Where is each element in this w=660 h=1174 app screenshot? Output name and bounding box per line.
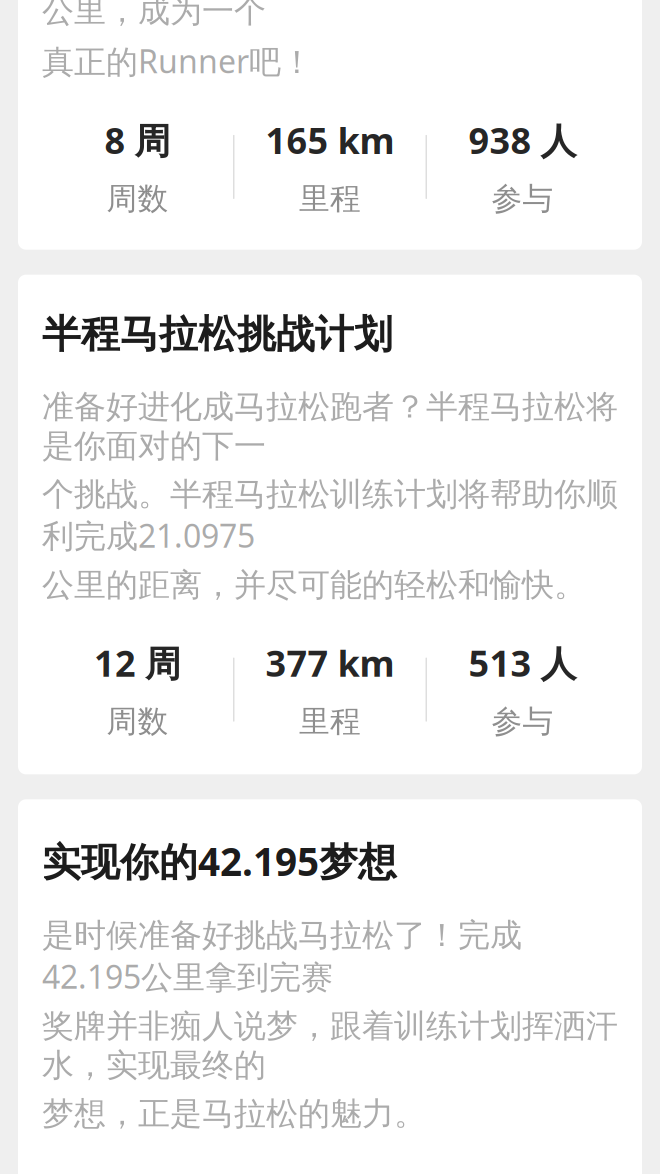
staticText: 梦想，正是马拉松的魅力。 — [42, 1094, 426, 1133]
staticText: 真正的Runner吧！ — [42, 40, 313, 82]
staticText: 个挑战。半程马拉松训练计划将帮助你顺利完成21.0975 — [42, 475, 618, 557]
staticText: 165 km — [265, 116, 394, 164]
staticText: 奖牌并非痴人说梦，跟着训练计划挥洒汗水，实现最终的 — [42, 1006, 618, 1085]
staticText: 12 周 — [94, 639, 181, 687]
staticText: 里程 — [299, 180, 361, 218]
staticText: 8 周 — [104, 116, 170, 164]
button[interactable]: 半程马拉松挑战计划 — [18, 275, 642, 774]
staticText: 938 人 — [468, 116, 576, 164]
staticText: 周数 — [106, 703, 168, 740]
staticText: 公里的距离，并尽可能的轻松和愉快。 — [42, 566, 586, 605]
staticText: 准备好进化成马拉松跑者？半程马拉松将是你面对的下一 — [42, 387, 618, 466]
staticText: 参与 — [491, 180, 553, 218]
staticText: 513 人 — [468, 639, 576, 687]
staticText: 里程 — [299, 703, 361, 740]
staticText: 是时候准备好挑战马拉松了！完成42.195公里拿到完赛 — [42, 916, 522, 997]
staticText: 感的开始。跟着计划，轻松写意的完成十公里，成为一个 — [42, 0, 618, 31]
staticText: 参与 — [491, 703, 553, 740]
staticText: 377 km — [265, 639, 394, 687]
staticText: 周数 — [106, 180, 168, 218]
button[interactable]: 实现你的42.195梦想 — [18, 799, 642, 1174]
button[interactable]: 成就你的第一个10K — [18, 0, 642, 250]
staticText: 半程马拉松挑战计划 — [42, 311, 393, 358]
staticText: 实现你的42.195梦想 — [42, 835, 397, 887]
